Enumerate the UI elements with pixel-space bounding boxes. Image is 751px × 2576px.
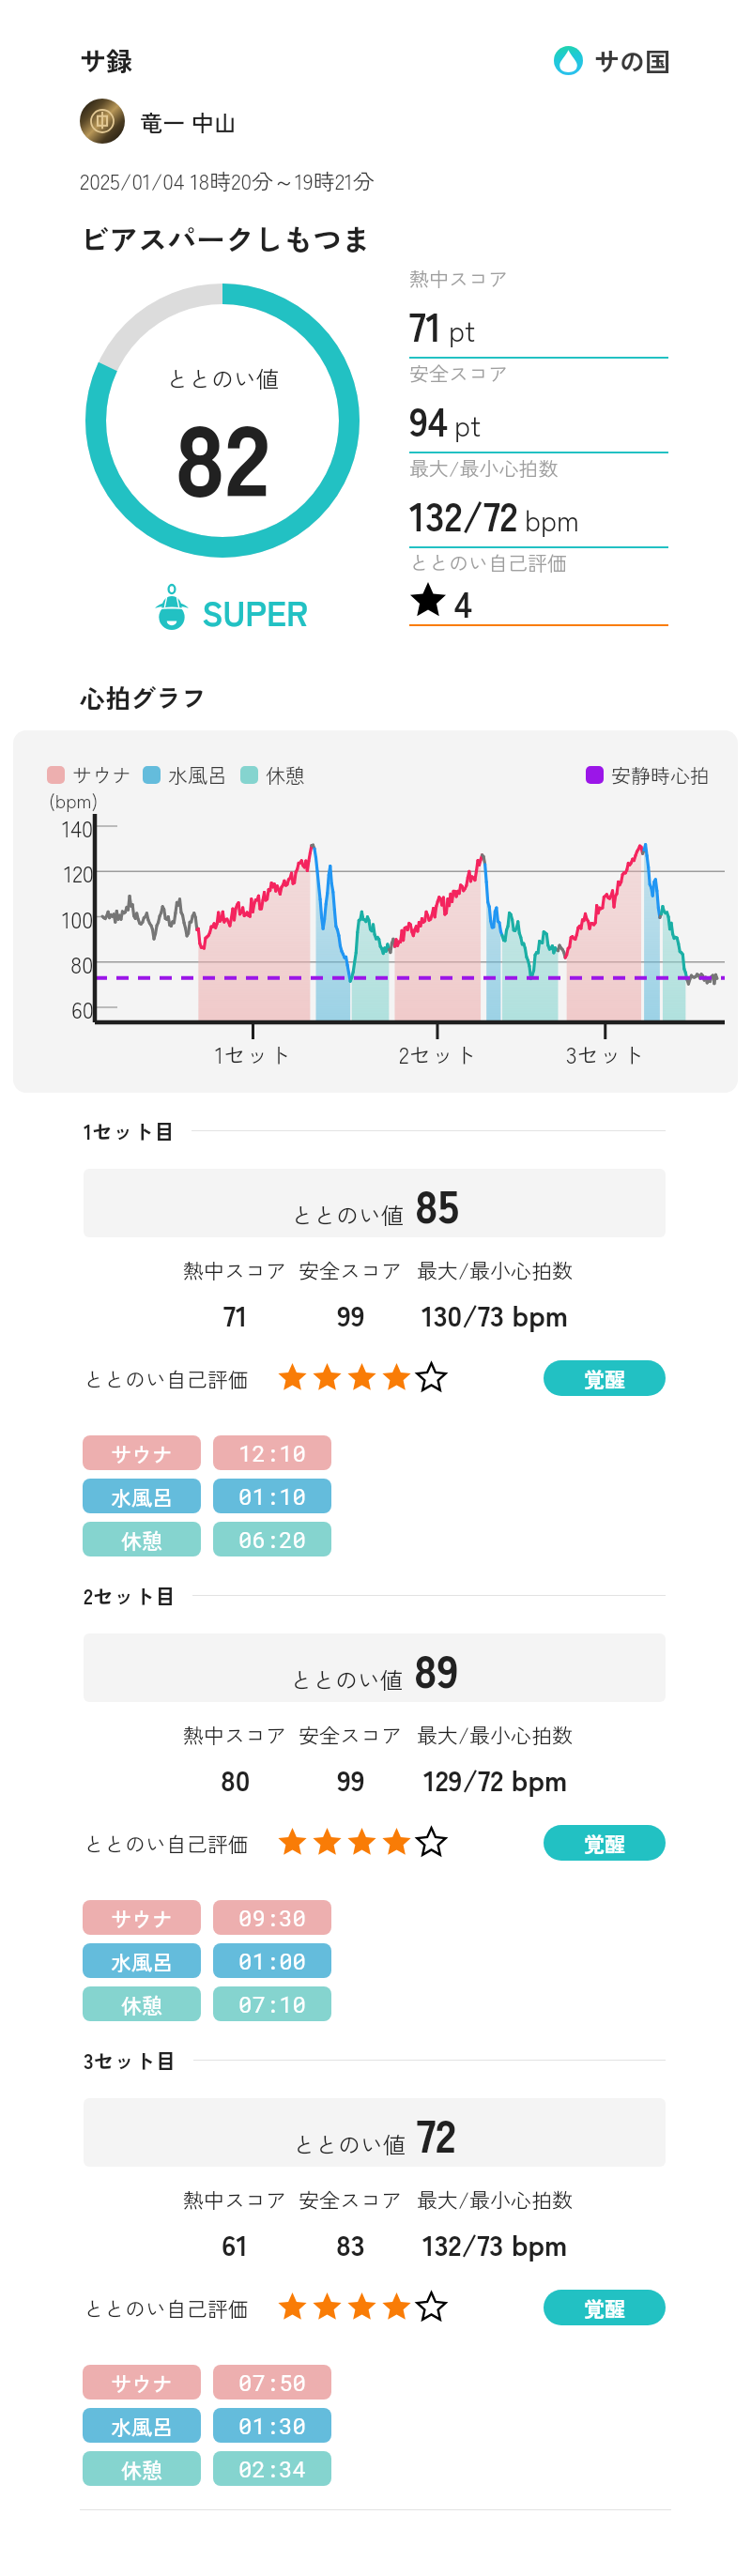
- staticText: 最大/最小心拍数: [417, 2184, 574, 2214]
- staticText: 休憩: [121, 2454, 163, 2484]
- button[interactable]: 01:00: [213, 1943, 331, 1978]
- button[interactable]: 竜一 中山: [80, 99, 751, 144]
- staticText: 心拍グラフ: [80, 679, 207, 715]
- staticText: 80: [70, 947, 94, 980]
- staticText: ととのい自己評価: [84, 1828, 250, 1858]
- staticText: 熱中スコア: [183, 2184, 287, 2214]
- button[interactable]: 休憩: [83, 1986, 201, 2021]
- staticText: 01:00: [238, 1946, 307, 1976]
- staticText: 安全スコア: [409, 359, 508, 387]
- staticText: 休憩: [121, 1525, 163, 1555]
- staticText: サ録: [80, 41, 133, 80]
- staticText: 85: [415, 1171, 459, 1236]
- staticText: 水風呂: [111, 2411, 174, 2441]
- staticText: 01:30: [238, 2411, 307, 2441]
- staticText: 12:10: [238, 1438, 307, 1468]
- button[interactable]: 01:30: [213, 2408, 331, 2443]
- staticText: 最大/最小心拍数: [409, 453, 559, 482]
- button[interactable]: 01:10: [213, 1479, 331, 1513]
- staticText: 99: [337, 1757, 365, 1800]
- button[interactable]: 休憩: [83, 1522, 201, 1556]
- button[interactable]: サの国 ロゴ: [554, 42, 670, 79]
- staticText: 2セット: [399, 1037, 477, 1070]
- button[interactable]: 02:34: [213, 2451, 331, 2486]
- staticText: 120: [64, 856, 94, 889]
- staticText: ととのい自己評価: [84, 1363, 250, 1393]
- staticText: 80: [221, 1757, 251, 1800]
- button[interactable]: 水風呂: [83, 2408, 201, 2443]
- button[interactable]: 06:20: [213, 1522, 331, 1556]
- staticText: 99: [337, 1293, 365, 1335]
- staticText: 熱中スコア: [409, 264, 508, 292]
- staticText: ととのい自己評価: [84, 2292, 250, 2323]
- button[interactable]: 覚醒: [544, 1825, 666, 1861]
- button[interactable]: 覚醒: [544, 1360, 666, 1396]
- staticText: 2025/01/04 18時20分～19時21分: [80, 164, 375, 196]
- staticText: bpm: [525, 498, 580, 539]
- staticText: 83: [336, 2222, 365, 2264]
- staticText: (bpm): [49, 787, 99, 814]
- staticText: 3セット目: [84, 2045, 176, 2075]
- staticText: 熱中スコア: [183, 1254, 287, 1284]
- staticText: サウナ: [111, 1903, 174, 1933]
- staticText: 132/73 bpm: [422, 2222, 568, 2264]
- staticText: 水風呂: [168, 760, 227, 789]
- button[interactable]: 安全スコア: [409, 359, 668, 453]
- button[interactable]: 09:30: [213, 1900, 331, 1935]
- staticText: サウナ: [111, 1438, 174, 1468]
- staticText: 最大/最小心拍数: [417, 1254, 574, 1284]
- staticText: 水風呂: [111, 1946, 174, 1976]
- staticText: ととのい値: [291, 1198, 404, 1231]
- button[interactable]: 07:10: [213, 1986, 331, 2021]
- staticText: SUPER: [202, 587, 309, 636]
- staticText: 最大/最小心拍数: [417, 1719, 574, 1749]
- staticText: サウナ: [72, 760, 131, 789]
- staticText: 60: [71, 992, 94, 1025]
- staticText: 水風呂: [111, 1481, 174, 1511]
- staticText: 61: [222, 2222, 249, 2264]
- staticText: 71: [409, 296, 442, 353]
- staticText: 100: [62, 902, 94, 935]
- button[interactable]: 水風呂: [83, 1943, 201, 1978]
- staticText: 4: [454, 576, 472, 624]
- button[interactable]: 07:50: [213, 2365, 331, 2400]
- staticText: 129/72 bpm: [423, 1757, 568, 1800]
- staticText: pt: [454, 404, 482, 444]
- button[interactable]: 覚醒: [544, 2290, 666, 2325]
- staticText: 安静時心拍: [611, 760, 710, 789]
- button[interactable]: 12:10: [213, 1435, 331, 1470]
- staticText: サウナ: [111, 2368, 174, 2398]
- staticText: ととのい値: [293, 2127, 406, 2160]
- button[interactable]: ととのい自己評価: [409, 548, 668, 626]
- button[interactable]: 水風呂: [83, 1479, 201, 1513]
- staticText: 01:10: [238, 1481, 307, 1511]
- staticText: 71: [223, 1293, 248, 1335]
- button[interactable]: 最大/最小心拍数: [409, 453, 668, 548]
- staticText: 1セット: [215, 1037, 292, 1070]
- staticText: ビアスパークしもつま: [80, 217, 371, 259]
- button[interactable]: 休憩: [83, 2451, 201, 2486]
- staticText: 06:20: [238, 1525, 307, 1555]
- staticText: ととのい値: [290, 1663, 403, 1695]
- staticText: 94: [409, 391, 448, 448]
- staticText: 熱中スコア: [183, 1719, 287, 1749]
- staticText: 07:50: [238, 2368, 307, 2398]
- staticText: ととのい自己評価: [409, 548, 567, 576]
- button[interactable]: ととのい値: [84, 2098, 666, 2167]
- staticText: 07:10: [238, 1989, 307, 2019]
- button[interactable]: サウナ: [83, 1900, 201, 1935]
- staticText: 1セット目: [84, 1115, 175, 1145]
- staticText: 覚醒: [584, 2292, 626, 2323]
- button[interactable]: ととのい値: [84, 1633, 666, 1702]
- staticText: 覚醒: [584, 1363, 626, 1393]
- button[interactable]: サウナ: [83, 2365, 201, 2400]
- staticText: 安全スコア: [299, 1719, 403, 1749]
- staticText: 安全スコア: [299, 2184, 403, 2214]
- staticText: 休憩: [266, 760, 305, 789]
- staticText: 89: [414, 1635, 459, 1701]
- staticText: 2セット目: [84, 1580, 176, 1610]
- button[interactable]: ととのい値: [84, 1169, 666, 1237]
- button[interactable]: 熱中スコア: [409, 264, 668, 359]
- staticText: 3セット: [566, 1037, 645, 1070]
- button[interactable]: サウナ: [83, 1435, 201, 1470]
